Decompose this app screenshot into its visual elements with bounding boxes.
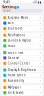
button[interactable]: Focus [2, 43, 42, 49]
button[interactable]: Display & Brightness [2, 67, 42, 73]
staticText: Control Center [8, 62, 30, 65]
staticText: Notifications [8, 33, 25, 37]
button[interactable]: Bluetooth [2, 26, 42, 31]
button[interactable]: Control Center [2, 61, 42, 66]
button[interactable]: Accessibility [2, 78, 42, 83]
staticText: Home Screen [8, 73, 26, 77]
staticText: Airplane Mode [8, 16, 29, 19]
button[interactable]: General [2, 55, 42, 61]
staticText: Siri & Search [8, 91, 24, 94]
staticText: Bluetooth [8, 27, 23, 30]
staticText: Focus [8, 44, 15, 48]
button[interactable]: Wallpaper [2, 85, 42, 90]
staticText: Settings [2, 4, 19, 9]
staticText: Screen Time [8, 51, 24, 54]
staticText: Sounds & Haptics [8, 39, 31, 42]
button[interactable]: Wi-Fi [2, 21, 42, 26]
staticText: General [8, 56, 19, 60]
button[interactable]: Notifications [2, 33, 42, 38]
button[interactable]: Screen Time [2, 50, 42, 55]
staticText: Display & Brightness [8, 68, 36, 72]
staticText: Search [3, 9, 11, 12]
staticText: Wallpaper [8, 86, 21, 89]
staticText: 9:41 [3, 0, 10, 4]
button[interactable]: Home Screen [2, 73, 42, 78]
staticText: ııll ⧫ ▮ [33, 0, 41, 4]
button[interactable]: Siri & Search [2, 90, 42, 95]
button[interactable]: Sounds & Haptics [2, 38, 42, 43]
staticText: Wi-Fi [8, 21, 14, 25]
button[interactable]: Airplane Mode [2, 15, 42, 21]
staticText: Accessibility [8, 79, 24, 82]
